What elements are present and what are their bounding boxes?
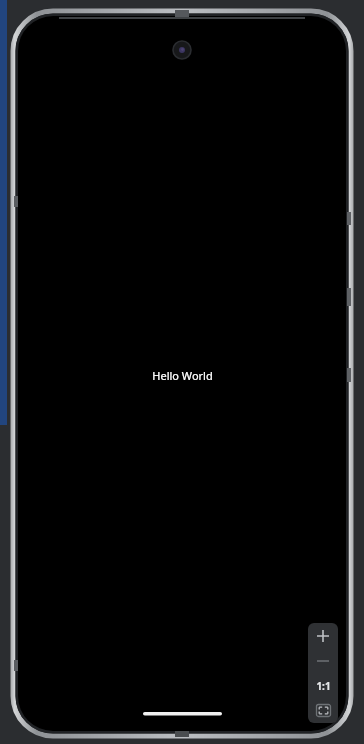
button[interactable]: Zoom in [308,623,338,649]
staticText: Hello World [152,368,213,383]
button[interactable]: Zoom out [308,649,338,673]
staticText: 1:1 [316,679,331,693]
button[interactable]: Fit to screen [308,698,338,723]
button[interactable]: 1:1 [308,673,338,698]
